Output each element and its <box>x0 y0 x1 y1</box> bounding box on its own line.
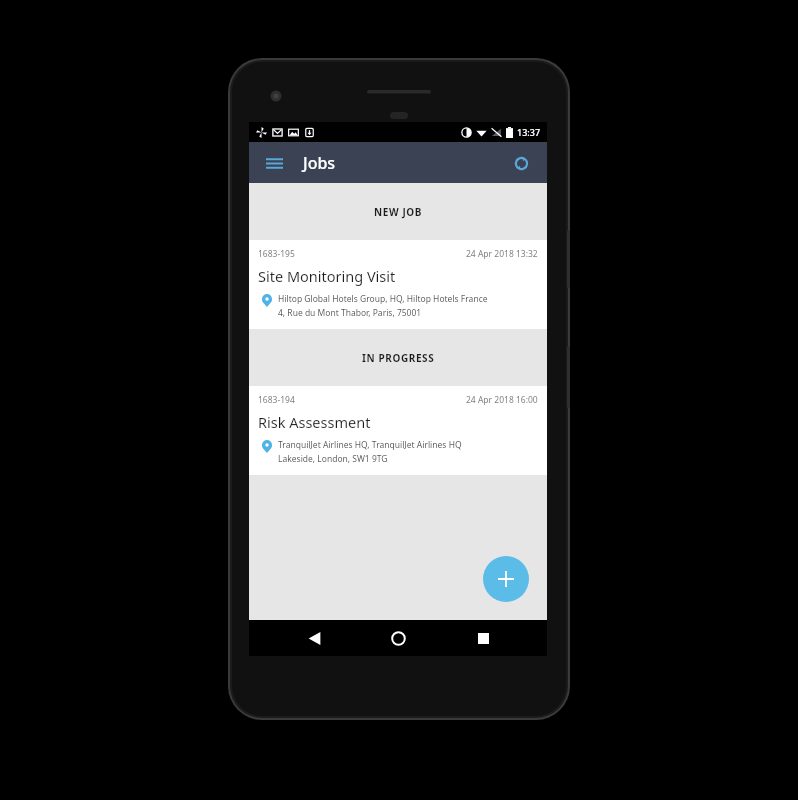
button[interactable]: Create new job <box>483 556 529 602</box>
button[interactable]: Back <box>294 620 334 656</box>
staticText: 4, Rue du Mont Thabor, Paris, 75001 <box>278 307 422 319</box>
staticText: 1683-195 <box>258 248 295 260</box>
staticText: IN PROGRESS <box>362 351 435 365</box>
staticText: TranquilJet Airlines HQ, TranquilJet Air… <box>278 439 462 451</box>
button[interactable]: Open navigation menu <box>259 148 289 178</box>
staticText: 24 Apr 2018 16:00 <box>466 394 538 406</box>
staticText: NEW JOB <box>374 205 423 219</box>
staticText: Lakeside, London, SW1 9TG <box>278 453 388 465</box>
staticText: Jobs <box>303 152 336 174</box>
button[interactable]: 1683-194 <box>249 386 547 475</box>
button[interactable]: Recent apps <box>463 620 503 656</box>
staticText: 24 Apr 2018 13:32 <box>466 248 538 260</box>
staticText: Risk Assessment <box>258 412 371 432</box>
button[interactable]: Refresh jobs <box>505 147 537 179</box>
staticText: 13:37 <box>517 126 541 138</box>
staticText: Site Monitoring Visit <box>258 266 396 286</box>
staticText: 1683-194 <box>258 394 295 406</box>
button[interactable]: 1683-195 <box>249 240 547 329</box>
button[interactable]: Home <box>378 620 418 656</box>
staticText: Hiltop Global Hotels Group, HQ, Hiltop H… <box>278 293 488 305</box>
